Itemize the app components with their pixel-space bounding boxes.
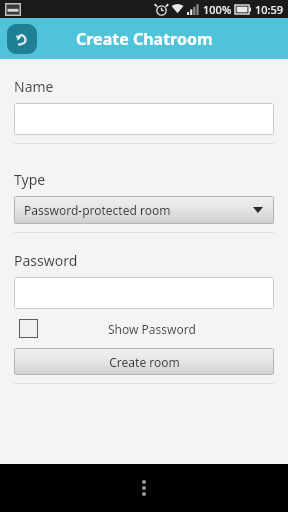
staticText: Password bbox=[14, 251, 78, 270]
button[interactable]: More options bbox=[124, 468, 164, 508]
staticText: 10:59 bbox=[255, 2, 284, 17]
staticText: Type bbox=[14, 170, 46, 189]
staticText: 100% bbox=[203, 2, 232, 17]
staticText: Password-protected room bbox=[24, 202, 171, 218]
button[interactable]: Back bbox=[7, 24, 37, 54]
button[interactable] bbox=[14, 277, 274, 309]
button[interactable]: Create room bbox=[14, 348, 274, 375]
staticText: Show Password bbox=[108, 321, 196, 337]
button[interactable] bbox=[14, 103, 274, 135]
button[interactable]: Show Password bbox=[14, 319, 274, 338]
staticText: Name bbox=[14, 77, 54, 96]
staticText: Create room bbox=[109, 354, 180, 370]
button[interactable]: Password-protected room bbox=[14, 196, 274, 224]
staticText: Create Chatroom bbox=[76, 28, 213, 50]
